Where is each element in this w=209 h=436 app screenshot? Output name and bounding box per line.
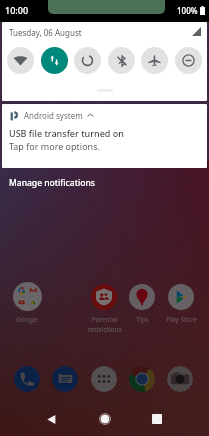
staticText: Android system <box>24 110 83 121</box>
button[interactable]: Airplane mode <box>141 47 168 74</box>
button[interactable]: Wi-Fi <box>7 47 34 74</box>
staticText: Tap for more options. <box>9 140 100 152</box>
button[interactable]: Mobile data <box>41 47 68 74</box>
staticText: Parental restrictions <box>87 315 122 334</box>
button[interactable]: Auto rotate <box>74 47 101 74</box>
staticText: Google <box>16 315 38 324</box>
button[interactable]: Google <box>7 282 47 328</box>
staticText: Tips <box>136 315 149 324</box>
button[interactable]: Android system <box>2 104 207 168</box>
staticText: Play Store <box>166 315 197 324</box>
button[interactable]: All apps <box>91 366 117 392</box>
button[interactable]: Home <box>92 406 118 432</box>
button[interactable]: Back <box>38 406 64 432</box>
button[interactable]: Tips <box>122 282 162 328</box>
staticText: Manage notifications <box>9 177 95 189</box>
staticText: 10:00 <box>5 4 29 16</box>
staticText: 100% <box>177 5 198 16</box>
button[interactable]: Camera <box>167 366 193 392</box>
staticText: USB file transfer turned on <box>9 127 124 139</box>
button[interactable]: Parental restrictions <box>84 282 124 328</box>
button[interactable]: Recent apps <box>144 406 170 432</box>
button[interactable]: Bluetooth <box>108 47 135 74</box>
button[interactable]: Chrome <box>129 366 155 392</box>
button[interactable]: Messages <box>52 366 78 392</box>
button[interactable]: Do not disturb <box>175 47 202 74</box>
button[interactable]: Play Store <box>161 282 201 328</box>
button[interactable]: Manage notifications <box>9 177 95 189</box>
staticText: Tuesday, 06 August <box>9 27 82 38</box>
button[interactable]: Phone <box>14 366 40 392</box>
